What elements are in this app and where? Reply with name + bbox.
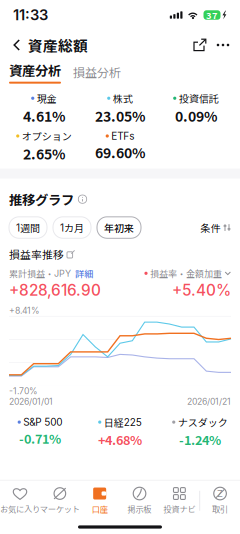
staticText: 資産総額 <box>28 34 88 56</box>
staticText: Z <box>217 488 223 499</box>
button[interactable]: Z <box>200 486 240 515</box>
staticText: 損益分析 <box>73 63 121 81</box>
staticText: 推移グラフ <box>9 189 74 209</box>
button[interactable]: 資産分析 <box>9 60 61 84</box>
staticText: 日経225 <box>104 415 142 429</box>
staticText: +5.40% <box>172 281 231 299</box>
staticText: 掲示板 <box>127 503 151 515</box>
staticText: ETFs <box>111 130 134 142</box>
staticText: マーケット <box>40 503 80 515</box>
staticText: -1.24% <box>179 430 221 449</box>
staticText: 累計損益・JPY <box>9 267 71 280</box>
button[interactable]: マーケット <box>40 486 80 515</box>
staticText: -1.70% <box>9 386 38 396</box>
staticText: +8.41% <box>9 305 40 316</box>
staticText: ナスダック <box>178 415 228 429</box>
staticText: 2026/01/21 <box>187 396 231 407</box>
staticText: 69.60% <box>95 142 145 162</box>
staticText: お気に入り <box>0 503 40 515</box>
staticText: 損益率・金額加重 <box>150 267 222 280</box>
staticText: 1カ月 <box>60 220 84 235</box>
button[interactable]: 投資ナビ <box>159 486 199 515</box>
staticText: 株式 <box>113 91 133 105</box>
button[interactable]: 掲示板 <box>120 486 159 515</box>
button[interactable]: 損益分析 <box>61 63 121 84</box>
staticText: 損益率推移 <box>9 246 64 262</box>
staticText: -0.71% <box>19 429 61 447</box>
staticText: 投資信託 <box>179 91 219 105</box>
button[interactable]: 条件 <box>200 220 231 235</box>
staticText: 23.05% <box>95 105 145 126</box>
staticText: 条件 <box>200 220 220 235</box>
staticText: 年初来 <box>104 220 134 235</box>
staticText: S&P 500 <box>23 416 62 428</box>
staticText: 投資ナビ <box>163 503 195 515</box>
staticText: 口座 <box>92 503 108 515</box>
staticText: 取引 <box>212 503 228 515</box>
button[interactable]: お気に入り <box>0 486 40 515</box>
button[interactable]: 損益率・金額加重 <box>144 267 231 280</box>
staticText: 0.09% <box>175 105 217 126</box>
button[interactable]: 1週間 <box>9 217 47 238</box>
staticText: 現金 <box>37 91 57 105</box>
staticText: 37 <box>206 8 218 22</box>
staticText: 2026/01/01 <box>9 396 53 407</box>
staticText: 2.65% <box>23 143 65 163</box>
staticText: +828,616.90 <box>9 281 101 299</box>
staticText: 資産分析 <box>9 60 61 80</box>
staticText: 1週間 <box>16 220 40 235</box>
staticText: 詳細 <box>75 267 93 280</box>
button[interactable]: 詳細 <box>75 267 93 280</box>
staticText: 11:33 <box>13 6 48 24</box>
button[interactable]: Share <box>188 33 212 57</box>
button[interactable]: 口座 <box>80 486 120 515</box>
staticText: オプション <box>22 129 72 143</box>
staticText: +4.68% <box>98 430 142 449</box>
button[interactable]: More <box>212 33 234 57</box>
button[interactable]: Back <box>6 33 28 57</box>
button[interactable]: 年初来 <box>97 217 141 238</box>
button[interactable]: 1カ月 <box>53 217 91 238</box>
staticText: 4.61% <box>23 105 65 126</box>
